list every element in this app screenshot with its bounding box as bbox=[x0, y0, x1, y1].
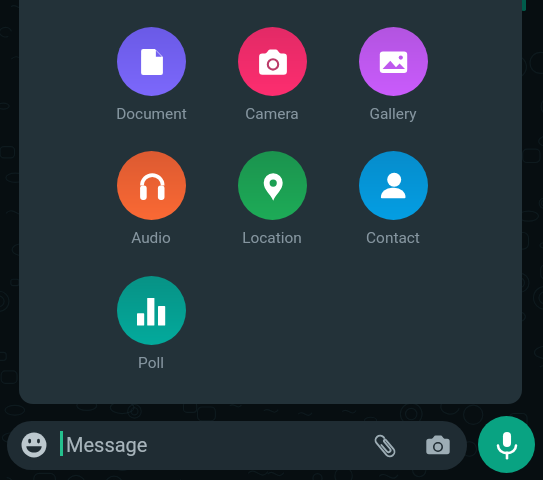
staticText: Audio bbox=[131, 229, 171, 247]
button[interactable]: Audio bbox=[101, 151, 201, 247]
button[interactable]: Camera bbox=[422, 430, 454, 462]
button[interactable]: Location bbox=[222, 151, 322, 247]
button[interactable]: Document bbox=[101, 27, 201, 123]
staticText: Gallery bbox=[369, 105, 417, 123]
staticText: Camera bbox=[245, 105, 299, 123]
button[interactable]: Attach bbox=[369, 430, 401, 462]
staticText: Contact bbox=[366, 229, 420, 247]
button[interactable]: Voice message bbox=[478, 416, 535, 473]
button[interactable]: Gallery bbox=[343, 27, 443, 123]
button[interactable]: Poll bbox=[101, 276, 201, 372]
button[interactable]: Emoji bbox=[7, 421, 467, 470]
button[interactable]: Contact bbox=[343, 151, 443, 247]
staticText: Message bbox=[66, 433, 148, 456]
staticText: Document bbox=[116, 105, 187, 123]
button[interactable]: Camera bbox=[222, 27, 322, 123]
staticText: Location bbox=[242, 229, 302, 247]
button[interactable]: Emoji bbox=[21, 432, 47, 458]
staticText: Poll bbox=[138, 354, 164, 372]
